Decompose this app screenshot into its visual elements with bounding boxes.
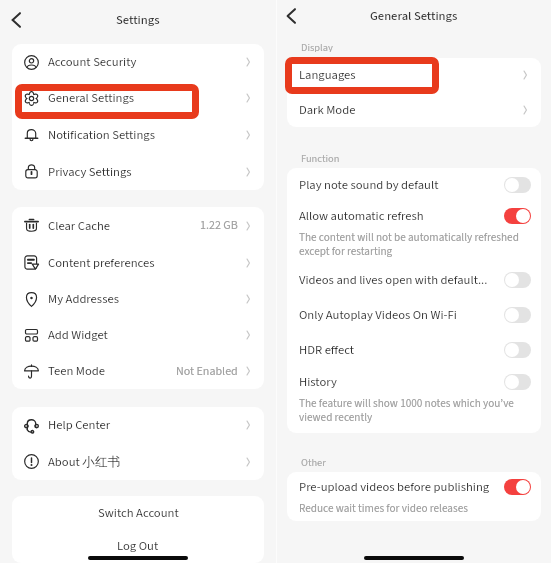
- staticText: The feature will show 1000 notes which y…: [299, 396, 525, 425]
- staticText: Account Security: [48, 53, 137, 71]
- button[interactable]: Back: [281, 4, 305, 28]
- staticText: Not Enabled: [176, 363, 238, 380]
- button[interactable]: Log Out: [12, 529, 264, 563]
- staticText: The content will not be automatically re…: [299, 230, 525, 259]
- staticText: Switch Account: [98, 504, 179, 522]
- staticText: Allow automatic refresh: [299, 207, 498, 225]
- staticText: Pre-upload videos before publishing: [299, 478, 498, 496]
- button[interactable]: Help Center: [12, 407, 264, 443]
- staticText: Reduce wait times for video releases: [299, 501, 468, 517]
- button[interactable]: Back: [6, 8, 30, 32]
- staticText: Add Widget: [48, 326, 108, 344]
- staticText: General Settings: [370, 7, 458, 25]
- button[interactable]: History: [287, 367, 541, 433]
- staticText: Languages: [299, 66, 356, 84]
- staticText: Settings: [116, 11, 160, 29]
- staticText: Content preferences: [48, 254, 155, 272]
- staticText: Dark Mode: [299, 101, 356, 119]
- button[interactable]: Privacy Settings: [12, 153, 264, 190]
- staticText: My Addresses: [48, 290, 119, 308]
- button[interactable]: Account Security: [12, 44, 264, 80]
- button[interactable]: Dark Mode: [287, 92, 541, 127]
- staticText: Videos and lives open with default...: [299, 271, 498, 289]
- staticText: Help Center: [48, 416, 111, 434]
- staticText: Notification Settings: [48, 126, 155, 144]
- staticText: Only Autoplay Videos On Wi-Fi: [299, 306, 498, 324]
- button[interactable]: Videos and lives open with default...: [287, 262, 541, 297]
- staticText: History: [299, 373, 498, 391]
- button[interactable]: Toggle off: [504, 342, 531, 358]
- staticText: Clear Cache: [48, 217, 111, 235]
- button[interactable]: Pre-upload videos before publishing: [287, 472, 541, 521]
- staticText: About 小红书: [48, 453, 121, 471]
- button[interactable]: Content preferences: [12, 244, 264, 281]
- staticText: 1.22 GB: [200, 217, 238, 234]
- button[interactable]: Clear Cache: [12, 207, 264, 244]
- button[interactable]: Teen Mode: [12, 353, 264, 389]
- button[interactable]: Toggle off: [504, 177, 531, 193]
- button[interactable]: Add Widget: [12, 317, 264, 353]
- staticText: General Settings: [48, 89, 135, 107]
- button[interactable]: Toggle off: [504, 307, 531, 323]
- button[interactable]: General Settings: [12, 80, 264, 116]
- button[interactable]: Toggle off: [504, 272, 531, 288]
- button[interactable]: Switch Account: [12, 496, 264, 529]
- staticText: Other: [301, 455, 326, 467]
- button[interactable]: Toggle on: [504, 479, 531, 495]
- staticText: Privacy Settings: [48, 163, 132, 181]
- staticText: HDR effect: [299, 341, 498, 359]
- button[interactable]: Notification Settings: [12, 116, 264, 153]
- staticText: Log Out: [117, 537, 159, 555]
- button[interactable]: Only Autoplay Videos On Wi-Fi: [287, 297, 541, 332]
- button[interactable]: Toggle off: [504, 374, 531, 390]
- button[interactable]: My Addresses: [12, 281, 264, 317]
- button[interactable]: Toggle on: [504, 208, 531, 224]
- button[interactable]: Play note sound by default: [287, 168, 541, 201]
- staticText: Display: [301, 40, 333, 52]
- staticText: Play note sound by default: [299, 176, 498, 194]
- button[interactable]: Languages: [287, 58, 541, 92]
- button[interactable]: Allow automatic refresh: [287, 201, 541, 262]
- staticText: Teen Mode: [48, 362, 106, 380]
- staticText: Function: [301, 151, 340, 163]
- button[interactable]: HDR effect: [287, 332, 541, 367]
- button[interactable]: About 小红书: [12, 443, 264, 480]
